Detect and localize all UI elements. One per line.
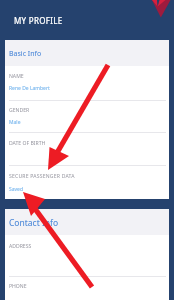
staticText: PHONE: [9, 283, 27, 290]
staticText: ADDRESS: [9, 243, 32, 250]
staticText: Rene De Lambert: [9, 85, 50, 92]
staticText: GENDER: [9, 107, 30, 114]
staticText: DATE OF BIRTH: [9, 140, 46, 147]
button[interactable]: DATE OF BIRTH: [5, 132, 169, 165]
staticText: Contact Info: [9, 217, 59, 229]
button[interactable]: GENDER: [5, 100, 169, 133]
button[interactable]: ADDRESS: [5, 235, 169, 276]
button[interactable]: Basic Info: [5, 40, 169, 66]
staticText: SECURE PASSENGER DATA: [9, 173, 75, 180]
staticText: NAME: [9, 73, 24, 80]
button[interactable]: MY PROFILE: [14, 15, 63, 26]
staticText: Saved: [9, 186, 23, 193]
staticText: Male: [9, 119, 21, 126]
button[interactable]: Contact Info: [5, 209, 169, 235]
button[interactable]: NAME: [5, 66, 169, 100]
button[interactable]: PHONE: [5, 276, 169, 300]
button[interactable]: SECURE PASSENGER DATA: [5, 165, 169, 199]
other: Delta logo: [150, 0, 174, 18]
staticText: Basic Info: [9, 49, 42, 59]
